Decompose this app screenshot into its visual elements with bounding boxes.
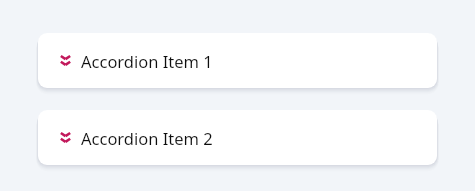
button[interactable]: Expand Accordion Item 1 <box>38 33 437 88</box>
other: Expand Accordion Item 2 <box>58 130 73 145</box>
staticText: Accordion Item 2 <box>81 127 213 149</box>
other: Expand Accordion Item 1 <box>58 53 73 68</box>
button[interactable]: Expand Accordion Item 2 <box>38 110 437 165</box>
staticText: Accordion Item 1 <box>81 50 213 72</box>
